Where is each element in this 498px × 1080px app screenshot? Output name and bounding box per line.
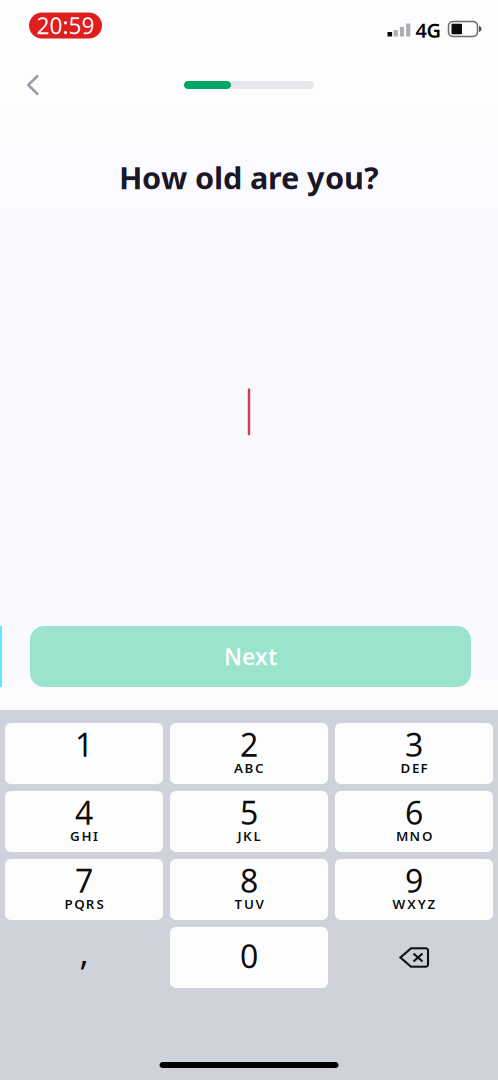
staticText: TUV (234, 895, 264, 907)
staticText: PQRS (65, 895, 103, 907)
button[interactable]: 8 (170, 859, 328, 920)
button[interactable]: Delete (335, 927, 493, 988)
button[interactable]: 4 (5, 791, 163, 852)
button[interactable]: 2 (170, 723, 328, 784)
staticText: DEF (400, 759, 428, 771)
button[interactable]: Next (30, 626, 471, 687)
staticText: 4G (415, 17, 441, 43)
staticText: WXYZ (393, 895, 435, 907)
button[interactable]: 0 (170, 927, 328, 988)
staticText: 4 (75, 791, 93, 827)
button[interactable]: 1 (5, 723, 163, 784)
staticText: 2 (240, 723, 258, 759)
staticText: 9 (405, 859, 423, 895)
button[interactable]: 7 (5, 859, 163, 920)
staticText: Next (224, 641, 277, 671)
staticText: 0 (240, 934, 258, 977)
staticText: JKL (237, 827, 261, 839)
staticText: 20:59 (36, 10, 94, 40)
button[interactable]: 6 (335, 791, 493, 852)
button[interactable]: 3 (335, 723, 493, 784)
staticText: How old are you? (119, 157, 379, 198)
button[interactable]: Comma (5, 927, 163, 988)
staticText: 1 (75, 723, 93, 759)
staticText: 6 (405, 791, 423, 827)
staticText: , (79, 929, 88, 975)
button[interactable]: 9 (335, 859, 493, 920)
button[interactable]: Back (10, 63, 56, 107)
staticText: 8 (240, 859, 258, 895)
staticText: ABC (234, 759, 264, 771)
staticText: 7 (75, 859, 93, 895)
staticText: MNO (396, 827, 432, 839)
staticText: 3 (405, 723, 423, 759)
staticText: GHI (70, 827, 98, 839)
button[interactable]: 5 (170, 791, 328, 852)
staticText: 5 (240, 791, 258, 827)
